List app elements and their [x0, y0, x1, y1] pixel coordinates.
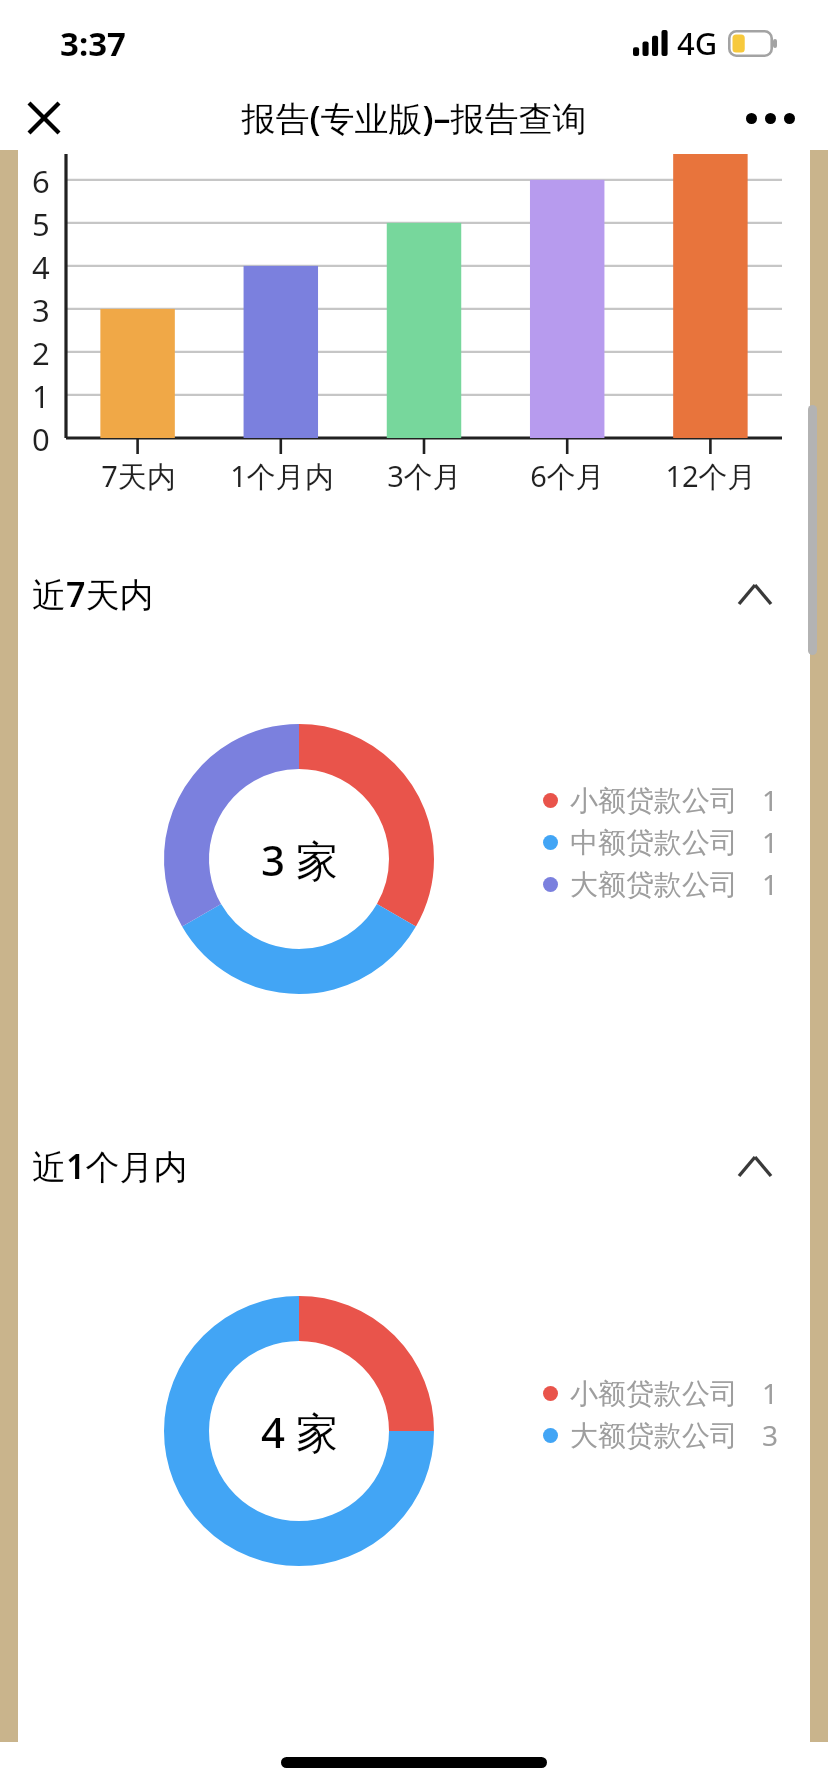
button[interactable]: 近7天内: [18, 556, 810, 632]
staticText: 3: [32, 289, 50, 331]
staticText: 4G: [677, 22, 718, 64]
staticText: 3个月: [387, 456, 462, 496]
staticText: 1: [762, 823, 779, 861]
staticText: 6个月: [530, 456, 605, 496]
button[interactable]: 中额贷款公司: [543, 821, 779, 863]
staticText: 1: [762, 781, 779, 819]
staticText: 小额贷款公司: [570, 1376, 738, 1411]
staticText: 小额贷款公司: [570, 783, 738, 818]
staticText: 报告(专业版)–报告查询: [241, 95, 587, 141]
button[interactable]: 小额贷款公司: [543, 1372, 779, 1414]
button[interactable]: 大额贷款公司: [543, 863, 779, 905]
staticText: 中额贷款公司: [570, 825, 738, 860]
staticText: 1: [32, 375, 50, 417]
staticText: 0: [32, 418, 50, 460]
other: Collapse: [730, 569, 780, 619]
staticText: 近1个月内: [32, 1143, 188, 1189]
staticText: 1: [762, 865, 779, 903]
button[interactable]: 近1个月内: [18, 1128, 810, 1204]
staticText: 近7天内: [32, 571, 154, 617]
staticText: 3:37: [60, 21, 126, 66]
staticText: 5: [32, 203, 50, 245]
other: Collapse: [730, 1141, 780, 1191]
staticText: 12个月: [665, 456, 757, 496]
button[interactable]: 小额贷款公司: [543, 779, 779, 821]
staticText: 大额贷款公司: [570, 867, 738, 902]
staticText: 4: [32, 246, 50, 288]
staticText: 1: [762, 1374, 779, 1412]
button[interactable]: 大额贷款公司: [543, 1414, 779, 1456]
staticText: 3 家: [261, 831, 338, 888]
staticText: 3: [762, 1416, 779, 1454]
button[interactable]: Close: [16, 90, 72, 146]
staticText: 大额贷款公司: [570, 1418, 738, 1453]
staticText: 1个月内: [230, 456, 334, 496]
staticText: 7天内: [101, 456, 176, 496]
button[interactable]: More options: [734, 90, 806, 146]
staticText: 4 家: [261, 1403, 338, 1460]
staticText: 2: [32, 332, 50, 374]
staticText: 6: [32, 160, 50, 202]
